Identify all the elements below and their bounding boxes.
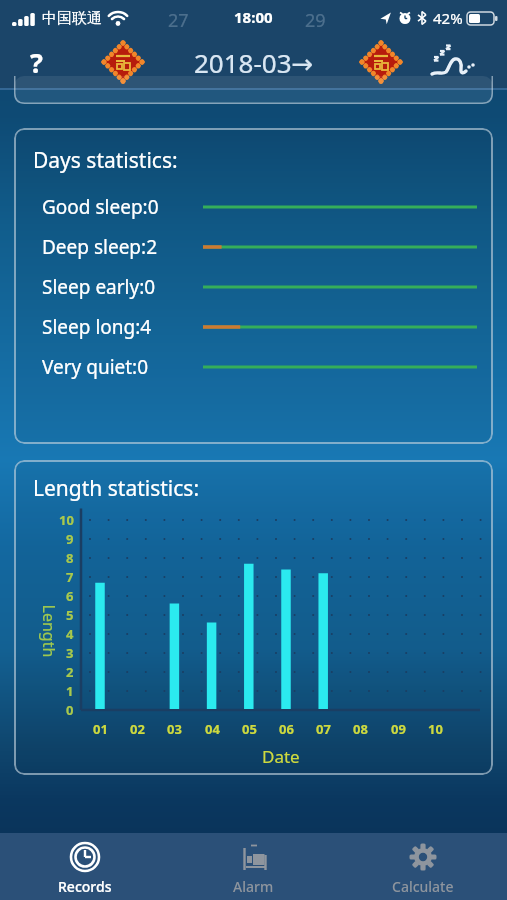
staticText: 29 (305, 8, 326, 33)
staticText: Length statistics: (33, 474, 200, 503)
staticText: 08 (353, 720, 368, 738)
staticText: 10 (59, 511, 74, 529)
staticText: 10 (428, 720, 443, 738)
button[interactable]: Very quiet:0 (42, 353, 477, 381)
staticText: 8 (66, 549, 74, 567)
staticText: 04 (205, 720, 220, 738)
staticText: 0 (66, 701, 74, 719)
staticText: 27 (168, 8, 189, 33)
staticText: 05 (242, 720, 257, 738)
staticText: Length (37, 604, 59, 657)
button[interactable] (102, 41, 144, 83)
staticText: Sleep early:0 (42, 274, 156, 300)
staticText: Sleep long:4 (42, 314, 152, 340)
button[interactable]: Sleep early:0 (42, 273, 477, 301)
staticText: Records (58, 877, 112, 896)
staticText: 9 (66, 530, 74, 548)
staticText: 中国联通 (42, 9, 102, 28)
staticText: 42% (433, 8, 463, 28)
button[interactable]: Calculate (338, 833, 507, 900)
staticText: 06 (279, 720, 294, 738)
staticText: Good sleep:0 (42, 194, 159, 220)
staticText: 6 (66, 587, 74, 605)
button[interactable]: ? (30, 44, 43, 81)
staticText: Very quiet:0 (42, 354, 149, 380)
staticText: 18:00 (234, 7, 273, 27)
button[interactable]: Records (0, 833, 169, 900)
staticText: Date (262, 745, 300, 768)
staticText: 01 (93, 720, 108, 738)
staticText: 1 (66, 682, 74, 700)
button[interactable] (360, 41, 402, 83)
button[interactable]: 2018-03→ (194, 45, 314, 80)
staticText: Days statistics: (33, 146, 178, 175)
button[interactable]: Deep sleep:2 (42, 233, 477, 261)
staticText: 02 (130, 720, 145, 738)
button[interactable]: Sleep long:4 (42, 313, 477, 341)
button[interactable]: Alarm (169, 833, 338, 900)
staticText: 5 (66, 606, 74, 624)
staticText: 09 (391, 720, 406, 738)
button[interactable]: Good sleep:0 (42, 193, 477, 221)
staticText: 07 (316, 720, 331, 738)
staticText: 7 (66, 568, 74, 586)
button[interactable] (430, 44, 474, 80)
staticText: Alarm (233, 877, 274, 896)
staticText: 2 (66, 663, 74, 681)
staticText: 3 (66, 644, 74, 662)
staticText: Calculate (392, 877, 454, 896)
staticText: 4 (66, 625, 74, 643)
staticText: 03 (167, 720, 182, 738)
staticText: Deep sleep:2 (42, 234, 158, 260)
